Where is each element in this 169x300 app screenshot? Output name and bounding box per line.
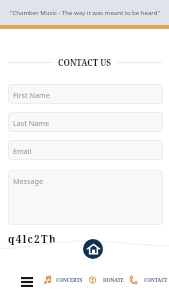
staticText: CONTACT US <box>58 57 112 68</box>
button[interactable]: CONCERTS <box>42 273 85 287</box>
staticText: Message <box>13 176 43 186</box>
staticText: Last Name <box>13 118 49 128</box>
button[interactable]: DONATE <box>87 273 126 287</box>
staticText: "Chamber Music - The way it was meant to… <box>10 9 160 17</box>
button[interactable]: Email <box>8 140 163 160</box>
staticText: CONTACT <box>144 277 168 284</box>
staticText: First Name <box>13 90 50 100</box>
staticText: CONCERTS <box>56 277 83 284</box>
staticText: Email <box>13 146 32 156</box>
button[interactable]: Menu <box>19 274 35 289</box>
button[interactable]: Last Name <box>8 112 163 132</box>
button[interactable]: Message <box>8 170 163 225</box>
button[interactable]: Home <box>83 239 103 259</box>
button[interactable]: CONTACT <box>128 273 169 287</box>
button[interactable]: First Name <box>8 84 163 104</box>
staticText: DONATE <box>103 277 124 284</box>
staticText: q4lc2Th <box>8 232 57 246</box>
